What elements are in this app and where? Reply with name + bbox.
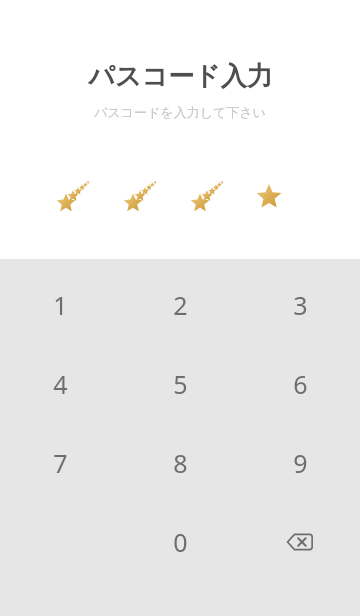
button[interactable]: Delete (240, 502, 360, 581)
button[interactable]: 6 (240, 344, 360, 423)
button[interactable]: 1 (0, 265, 120, 344)
staticText: 6 (293, 367, 308, 401)
button[interactable]: 9 (240, 423, 360, 502)
staticText: パスコード入力 (88, 60, 273, 93)
button[interactable]: 4 (0, 344, 120, 423)
staticText: 0 (173, 525, 188, 559)
button[interactable]: 2 (120, 265, 240, 344)
staticText: 9 (293, 446, 308, 480)
staticText: 4 (53, 367, 68, 401)
button[interactable]: 7 (0, 423, 120, 502)
button[interactable]: 5 (120, 344, 240, 423)
button[interactable]: 0 (120, 502, 240, 581)
staticText: 1 (53, 288, 68, 322)
staticText: 8 (173, 446, 188, 480)
staticText: 7 (53, 446, 68, 480)
staticText: 3 (293, 288, 308, 322)
staticText: パスコードを入力して下さい (94, 104, 266, 120)
staticText: 2 (173, 288, 188, 322)
button[interactable]: 8 (120, 423, 240, 502)
staticText: 5 (173, 367, 188, 401)
button[interactable]: 3 (240, 265, 360, 344)
